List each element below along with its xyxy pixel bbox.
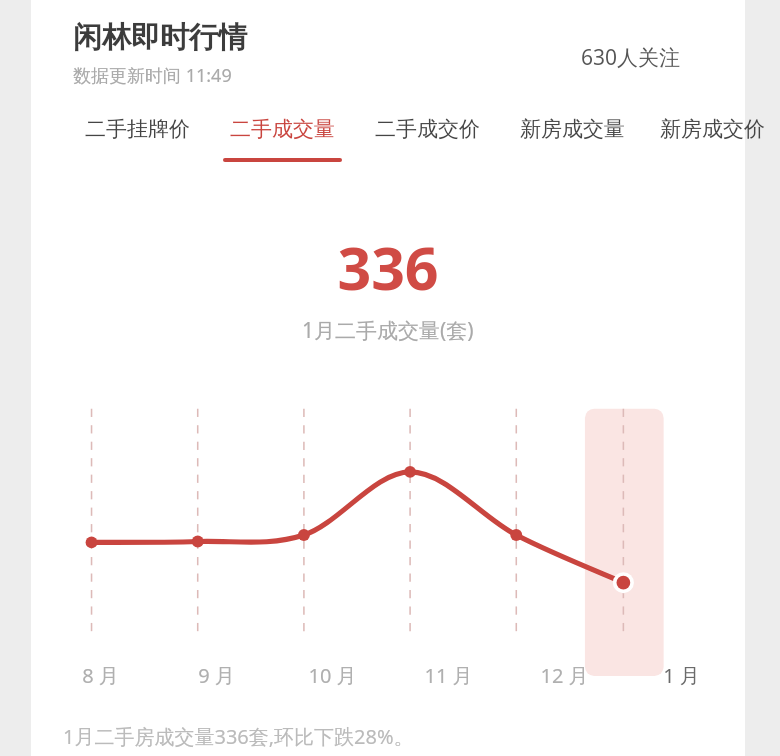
button[interactable]: 新房成交量 (500, 112, 645, 166)
staticText: 12 月 (540, 662, 589, 689)
staticText: 11 月 (424, 662, 473, 689)
staticText: 630人关注 (581, 43, 681, 72)
staticText: 闲林即时行情 (73, 19, 247, 56)
button[interactable]: 二手挂牌价 (65, 112, 210, 166)
staticText: 二手成交量 (230, 116, 335, 142)
button[interactable]: 新房成交价 (645, 112, 779, 166)
staticText: 数据更新时间 11:49 (73, 63, 232, 88)
staticText: 336 (337, 227, 439, 307)
button[interactable]: 二手成交量 (210, 112, 355, 166)
staticText: 新房成交量 (520, 116, 625, 142)
staticText: 8 月 (82, 662, 119, 689)
staticText: 10 月 (308, 662, 357, 689)
staticText: 二手挂牌价 (85, 116, 190, 142)
staticText: 1月二手房成交量336套,环比下跌28%。 (63, 723, 414, 750)
staticText: 新房成交价 (660, 116, 765, 142)
staticText: 9 月 (198, 662, 235, 689)
button[interactable]: 二手成交价 (355, 112, 500, 166)
staticText: 二手成交价 (375, 116, 480, 142)
staticText: 1 月 (663, 662, 700, 689)
staticText: 1月二手成交量(套) (302, 316, 474, 345)
